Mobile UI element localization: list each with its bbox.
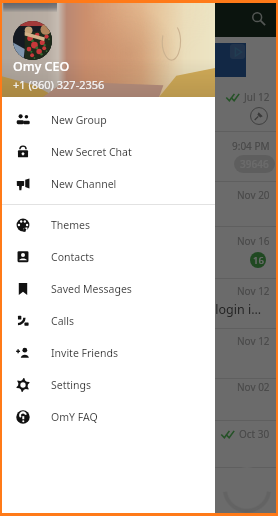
staticText: Oct 30	[239, 427, 270, 441]
button[interactable]	[0, 226, 278, 278]
button[interactable]	[0, 378, 278, 420]
button[interactable]	[0, 328, 278, 378]
button[interactable]: Settings	[0, 369, 215, 401]
button[interactable]: Search	[245, 5, 273, 33]
button[interactable]: Saved Messages	[0, 273, 215, 305]
button[interactable]: Themes	[0, 209, 215, 241]
staticText: 16	[253, 254, 264, 267]
button[interactable]	[0, 278, 278, 328]
staticText: Calls	[51, 314, 74, 328]
staticText: Settings	[51, 378, 91, 392]
staticText: 9:04 PM	[232, 139, 270, 153]
staticText: Invite Friends	[51, 346, 118, 360]
button[interactable]: Invite Friends	[0, 337, 215, 369]
staticText: +1 (860) 327-2356	[13, 77, 105, 92]
button[interactable]: Omy CEO	[0, 0, 215, 97]
staticText: Contacts	[51, 250, 95, 264]
button[interactable]: Calls	[0, 305, 215, 337]
staticText: a login i...	[205, 301, 262, 318]
staticText: New Group	[51, 113, 107, 127]
button[interactable]: New Channel	[0, 168, 215, 200]
button[interactable]: Contacts	[0, 241, 215, 273]
staticText: Nov 12	[237, 284, 270, 298]
staticText: New Channel	[51, 177, 117, 191]
button[interactable]: New Group	[0, 104, 215, 136]
button[interactable]	[0, 37, 278, 131]
button[interactable]	[0, 131, 278, 181]
button[interactable]: New Secret Chat	[0, 136, 215, 168]
staticText: New Secret Chat	[51, 145, 132, 159]
button[interactable]: OmY FAQ	[0, 401, 215, 433]
staticText: 39646	[240, 157, 269, 171]
staticText: Themes	[51, 218, 91, 232]
staticText: Omy CEO	[13, 58, 70, 75]
staticText: OmY FAQ	[51, 410, 98, 424]
button[interactable]	[0, 181, 278, 226]
staticText: Saved Messages	[51, 282, 132, 296]
staticText: Nov 16	[237, 234, 270, 248]
staticText: Nov 20	[237, 188, 270, 202]
button[interactable]	[0, 420, 278, 467]
staticText: Jul 12	[244, 90, 270, 104]
staticText: Nov 12	[237, 334, 270, 348]
staticText: Nov 02	[237, 380, 270, 394]
